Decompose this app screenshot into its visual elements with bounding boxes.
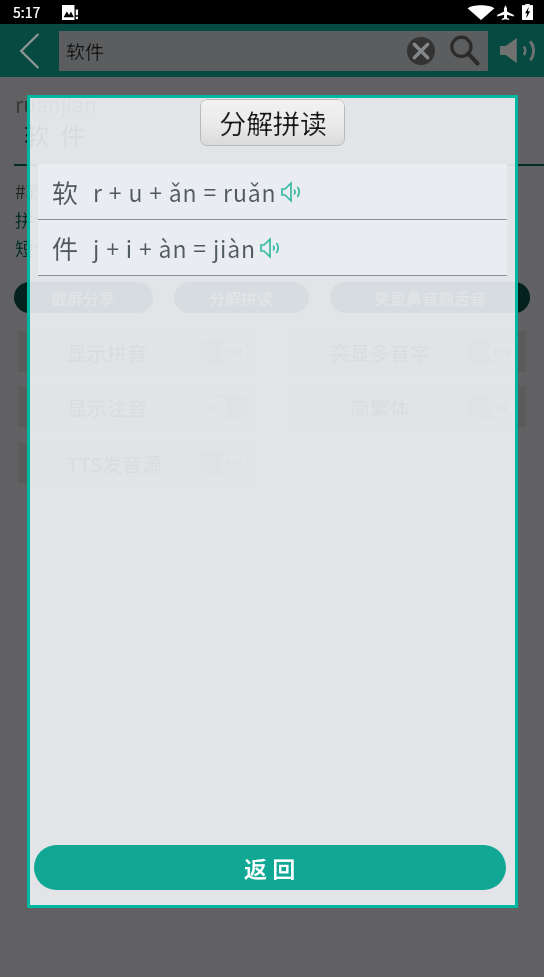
button[interactable]: 简	[466, 395, 517, 418]
staticText: 拼音	[15, 206, 54, 234]
staticText: 返 回	[244, 851, 296, 884]
button[interactable]: 分解拼读	[200, 99, 345, 146]
button[interactable]: 软	[38, 164, 507, 219]
staticText: 截屏分享	[51, 286, 116, 309]
button[interactable]	[18, 386, 256, 427]
staticText: j + i + àn = jiàn	[93, 231, 256, 264]
staticText: #软件	[15, 177, 64, 205]
staticText: 分解拼读	[219, 103, 327, 142]
button[interactable]	[288, 331, 526, 372]
button[interactable]: 返 回	[34, 845, 506, 890]
button[interactable]: 件	[38, 220, 507, 275]
staticText: 软 件	[24, 116, 86, 152]
staticText: 软	[52, 173, 79, 211]
button[interactable]: Read aloud	[487, 24, 544, 77]
staticText: 软件	[66, 37, 105, 65]
button[interactable]: ON	[466, 340, 517, 363]
staticText: 突显鼻音翘舌音	[374, 286, 487, 309]
button[interactable]	[288, 386, 526, 427]
button[interactable]: Back	[0, 24, 59, 77]
button[interactable]	[18, 442, 256, 483]
staticText: 5:17	[13, 2, 41, 22]
button[interactable]: 截屏分享	[14, 282, 153, 313]
staticText: 件	[52, 229, 79, 267]
button[interactable]: 分解拼读	[174, 282, 309, 313]
staticText: 短句	[15, 234, 54, 262]
button[interactable]	[18, 331, 256, 372]
staticText: r + u + ǎn = ruǎn	[93, 175, 277, 208]
staticText: ruanjian	[15, 89, 97, 119]
button[interactable]: 软件	[59, 31, 488, 71]
button[interactable]: 突显鼻音翘舌音	[330, 282, 530, 313]
staticText: 分解拼读	[209, 286, 274, 309]
button[interactable]: Search	[447, 33, 483, 69]
button[interactable]: Clear text	[403, 33, 439, 69]
